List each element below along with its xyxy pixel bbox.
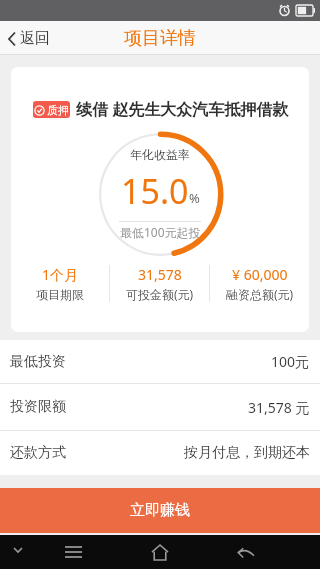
staticText: 按月付息，到期还本	[184, 444, 310, 462]
staticText: 15.0	[121, 168, 189, 214]
staticText: 还款方式	[10, 444, 66, 462]
button[interactable]	[229, 535, 263, 569]
staticText: ¥ 60,000	[232, 265, 288, 284]
staticText: 100元	[271, 352, 310, 371]
button[interactable]	[143, 535, 177, 569]
staticText: 最低投资	[10, 353, 66, 371]
button[interactable]: 立即赚钱	[0, 488, 320, 533]
staticText: %	[189, 189, 200, 207]
button[interactable]: 返回	[7, 29, 50, 48]
staticText: 最低100元起投	[120, 224, 201, 240]
staticText: 返回	[20, 29, 50, 48]
button[interactable]: 还款方式	[0, 431, 320, 475]
staticText: 1个月	[42, 265, 79, 284]
staticText: 质押	[47, 103, 69, 117]
staticText: 投资限额	[10, 398, 66, 416]
staticText: 年化收益率	[130, 147, 190, 162]
staticText: 31,578	[138, 265, 182, 284]
staticText: 立即赚钱	[130, 501, 190, 520]
staticText: 项目详情	[124, 27, 196, 50]
staticText: 31,578 元	[248, 398, 310, 417]
staticText: 融资总额(元)	[226, 286, 294, 302]
button[interactable]: 投资限额	[0, 384, 320, 430]
button[interactable]	[56, 535, 90, 569]
staticText: 项目期限	[36, 287, 84, 302]
button[interactable]: 最低投资	[0, 340, 320, 383]
staticText: 可投金额(元)	[126, 286, 194, 302]
staticText: 续借 赵先生大众汽车抵押借款	[76, 98, 289, 120]
